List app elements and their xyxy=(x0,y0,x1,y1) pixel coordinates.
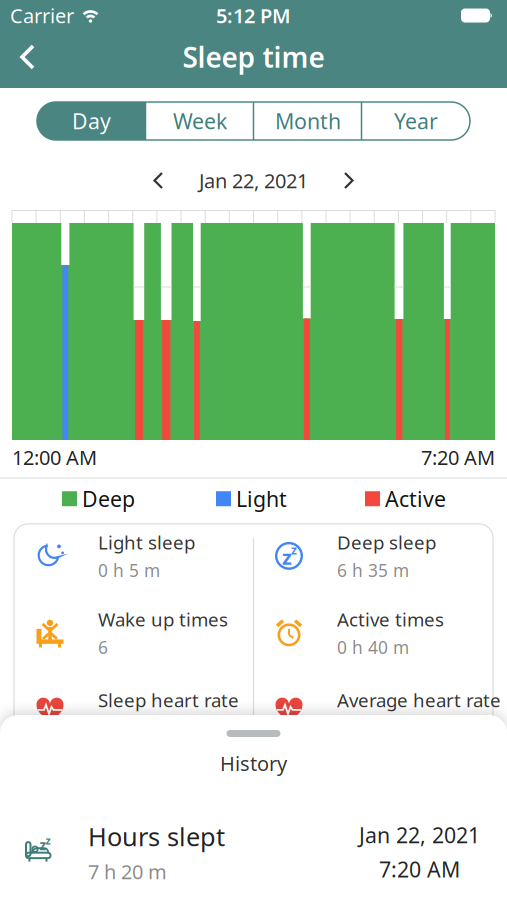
button[interactable]: Week xyxy=(146,102,254,140)
button[interactable]: Day xyxy=(37,102,146,140)
button[interactable]: Month xyxy=(254,102,362,140)
staticText: Active times xyxy=(337,607,444,632)
staticText: Carrier xyxy=(10,2,74,29)
staticText: z xyxy=(291,542,297,558)
staticText: Average heart rate xyxy=(337,687,501,712)
button[interactable]: Next day xyxy=(334,164,362,197)
staticText: Wake up times xyxy=(98,607,228,632)
staticText: z xyxy=(45,833,50,847)
staticText: 6 xyxy=(98,636,108,659)
staticText: 0 h 40 m xyxy=(337,636,409,659)
staticText: 0 h 5 m xyxy=(98,559,160,582)
staticText: Month xyxy=(275,107,341,135)
button[interactable]: Year xyxy=(362,102,470,140)
staticText: Light xyxy=(236,485,287,513)
staticText: Jan 22, 2021 xyxy=(199,167,308,194)
staticText: Deep xyxy=(82,485,135,513)
button[interactable]: Previous day xyxy=(144,164,172,197)
staticText: Hours slept xyxy=(88,820,225,853)
staticText: Jan 22, 2021 xyxy=(359,821,480,849)
staticText: Sleep time xyxy=(182,38,324,76)
staticText: 7:20 AM xyxy=(379,855,460,883)
staticText: Week xyxy=(173,107,227,135)
staticText: 6 h 35 m xyxy=(337,559,409,582)
button[interactable]: z xyxy=(0,777,507,885)
staticText: z xyxy=(282,544,292,570)
button[interactable]: Back xyxy=(0,32,38,82)
staticText: 12:00 AM xyxy=(12,444,97,471)
staticText: 5:12 PM xyxy=(216,2,291,29)
staticText: History xyxy=(220,750,287,777)
staticText: Deep sleep xyxy=(337,530,436,555)
staticText: 7:20 AM xyxy=(421,444,495,471)
staticText: Year xyxy=(394,107,438,135)
staticText: Sleep heart rate xyxy=(98,687,239,712)
staticText: Light sleep xyxy=(98,530,195,555)
staticText: 7 h 20 m xyxy=(88,858,167,885)
staticText: Active xyxy=(385,485,446,513)
staticText: Day xyxy=(72,107,111,135)
staticText: z xyxy=(39,836,46,854)
